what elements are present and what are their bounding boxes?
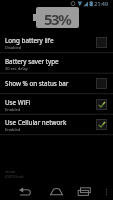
button[interactable]: [75, 183, 113, 200]
button[interactable]: Show % on status bar: [0, 73, 113, 94]
staticText: version: [5, 170, 16, 174]
staticText: Enabled: [5, 107, 21, 112]
staticText: Disabled: [5, 45, 22, 50]
staticText: 53%: [44, 9, 71, 29]
button[interactable]: Battery saver type: [0, 53, 113, 74]
staticText: Use WiFi: [5, 98, 31, 107]
staticText: Battery saver type: [5, 57, 59, 66]
staticText: 30 sec delay: [5, 66, 28, 71]
staticText: 21:49: [94, 0, 108, 8]
button[interactable]: [37, 183, 75, 200]
staticText: (C)2013 hsoft: [5, 175, 24, 179]
button[interactable]: Use WiFi: [0, 94, 113, 115]
button[interactable]: [0, 183, 37, 200]
staticText: Long battery life: [5, 36, 54, 45]
staticText: Use Cellular network: [5, 118, 67, 127]
button[interactable]: Long battery life: [0, 32, 113, 53]
button[interactable]: Use Cellular network: [0, 114, 113, 135]
staticText: Show % on status bar: [5, 79, 69, 88]
staticText: Enabled: [5, 127, 21, 132]
